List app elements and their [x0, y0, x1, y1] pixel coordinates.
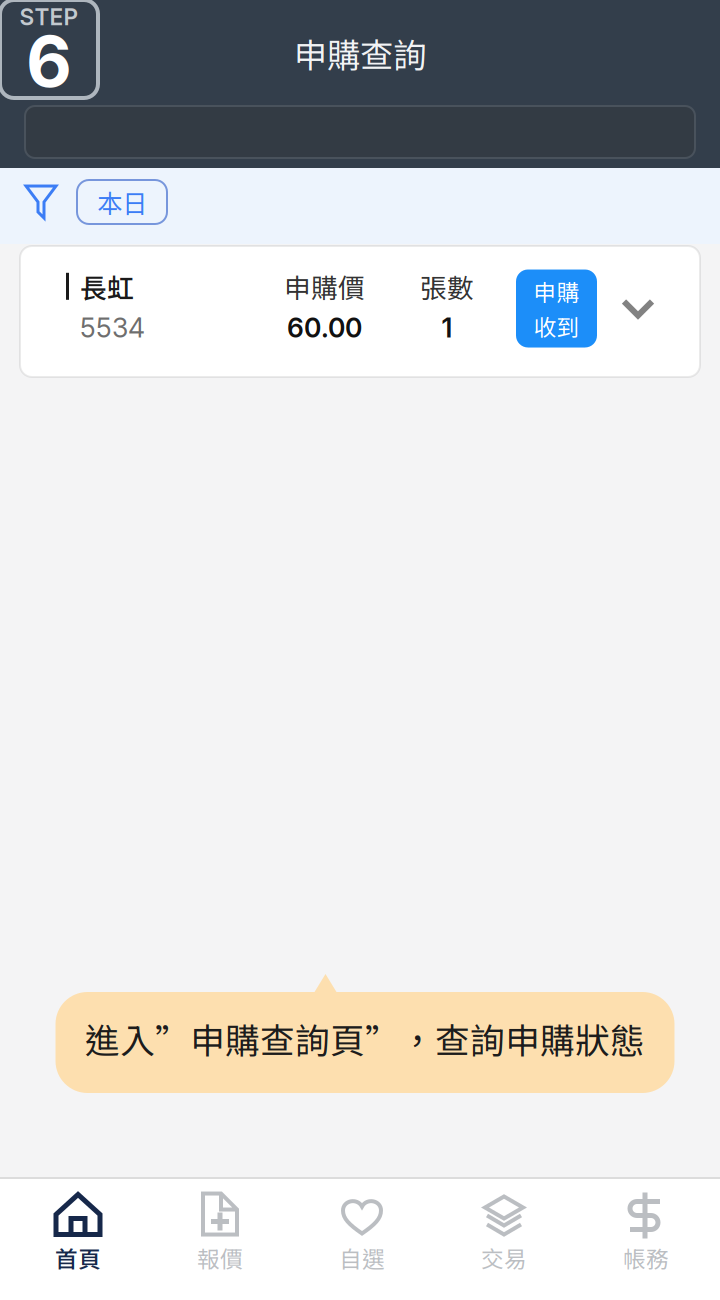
button[interactable]: 申購 — [516, 269, 597, 353]
staticText: 申購 — [533, 275, 579, 307]
staticText: 1 — [441, 312, 452, 344]
staticText: 交易 — [481, 1241, 527, 1274]
staticText: 收到 — [533, 309, 579, 342]
button[interactable]: 報價 — [149, 1169, 291, 1300]
staticText: STEP — [19, 3, 78, 31]
staticText: 60.00 — [287, 312, 362, 344]
button[interactable]: 自選 — [291, 1169, 433, 1300]
staticText: 本日 — [97, 184, 147, 220]
staticText: 5534 — [80, 312, 145, 344]
staticText: 首頁 — [55, 1241, 101, 1274]
staticText: 帳務 — [623, 1241, 669, 1274]
button[interactable]: 帳務 — [575, 1169, 717, 1300]
staticText: 自選 — [339, 1241, 385, 1274]
button[interactable]: 本日 — [77, 180, 167, 224]
staticText: 申購價 — [284, 267, 365, 306]
staticText: 張數 — [420, 267, 474, 306]
staticText: 6 — [26, 18, 72, 104]
button[interactable]: 交易 — [433, 1169, 575, 1300]
staticText: 長虹 — [80, 267, 134, 306]
staticText: 申購查詢 — [294, 29, 426, 77]
button[interactable]: 篩選 — [19, 177, 63, 227]
button[interactable]: 展開 — [597, 268, 679, 354]
button[interactable]: 首頁 — [7, 1169, 149, 1300]
staticText: 報價 — [197, 1241, 243, 1274]
staticText: 進入”申購查詢頁”，查詢申購狀態 — [85, 1013, 645, 1064]
